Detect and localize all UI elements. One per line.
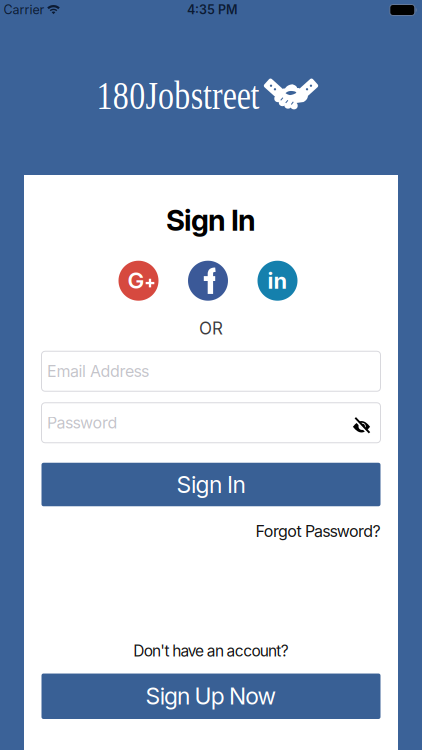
button[interactable]: Forgot Password? [255,522,380,541]
button[interactable]: Sign in with LinkedIn [257,261,297,301]
button[interactable]: Sign in with Facebook [188,261,228,301]
button[interactable]: Sign In [41,463,380,506]
button[interactable]: Password [41,403,380,443]
staticText: in [267,268,287,294]
staticText: G [127,267,144,293]
button[interactable]: Don't have an account? [133,642,289,660]
staticText: Sign In [166,203,256,237]
staticText: Forgot Password? [255,522,380,541]
staticText: Email Address [47,362,149,381]
staticText: Sign In [176,471,245,498]
staticText: Sign Up Now [145,683,276,710]
staticText: 4:35 PM [187,2,238,17]
staticText: Carrier [3,2,44,17]
staticText: OR [199,318,223,338]
button[interactable]: Show password [352,415,370,431]
staticText: Password [47,413,117,432]
button[interactable]: Sign in with Google [118,261,158,301]
button[interactable]: Email Address [41,351,380,391]
staticText: 180Jobstreet [78,74,277,117]
staticText: Don't have an account? [133,642,289,660]
button[interactable]: Sign Up Now [41,673,380,719]
